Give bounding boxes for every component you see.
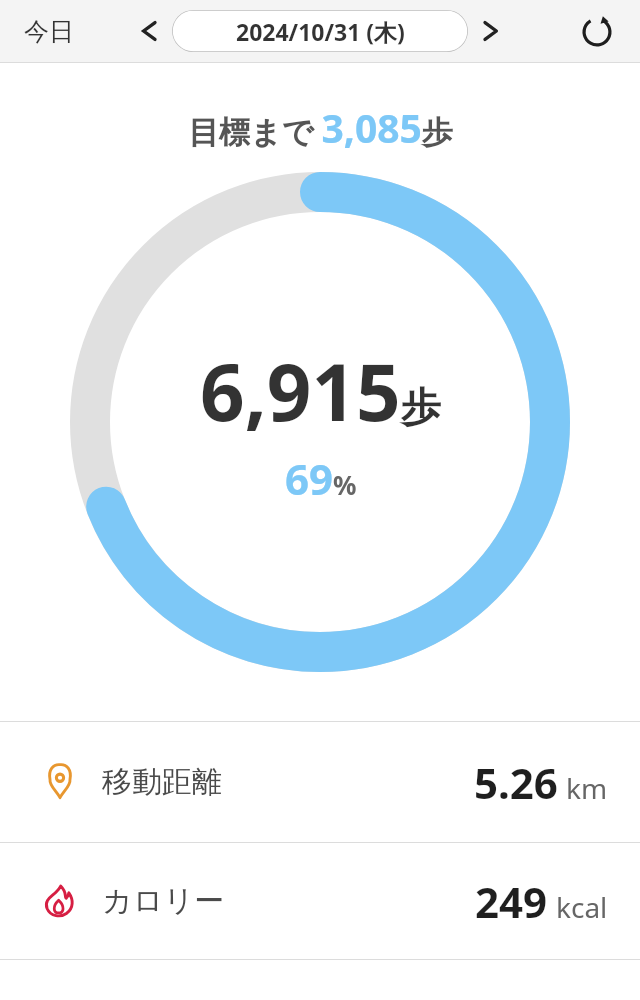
button[interactable]: Previous day — [126, 8, 172, 54]
other: Calories — [40, 881, 80, 921]
button[interactable]: Next day — [468, 8, 514, 54]
staticText: 目標まで 3,085歩 — [188, 101, 453, 154]
staticText: カロリー — [102, 882, 225, 920]
staticText: 249 — [475, 873, 548, 930]
staticText: 移動距離 — [102, 763, 222, 801]
staticText: km — [566, 769, 608, 807]
staticText: 69% — [285, 450, 357, 507]
button[interactable]: 今日 — [14, 10, 84, 53]
staticText: 6,915歩 — [200, 338, 441, 444]
staticText: kcal — [556, 888, 608, 926]
button[interactable]: 2024/10/31 (木) — [172, 10, 468, 52]
staticText: 2024/10/31 (木) — [236, 16, 405, 47]
button[interactable]: Refresh — [572, 6, 622, 56]
button[interactable]: Distance — [0, 722, 640, 842]
button[interactable]: Calories — [0, 843, 640, 959]
staticText: 5.26 — [474, 754, 558, 811]
staticText: 今日 — [24, 16, 74, 47]
other: Distance — [40, 762, 80, 802]
